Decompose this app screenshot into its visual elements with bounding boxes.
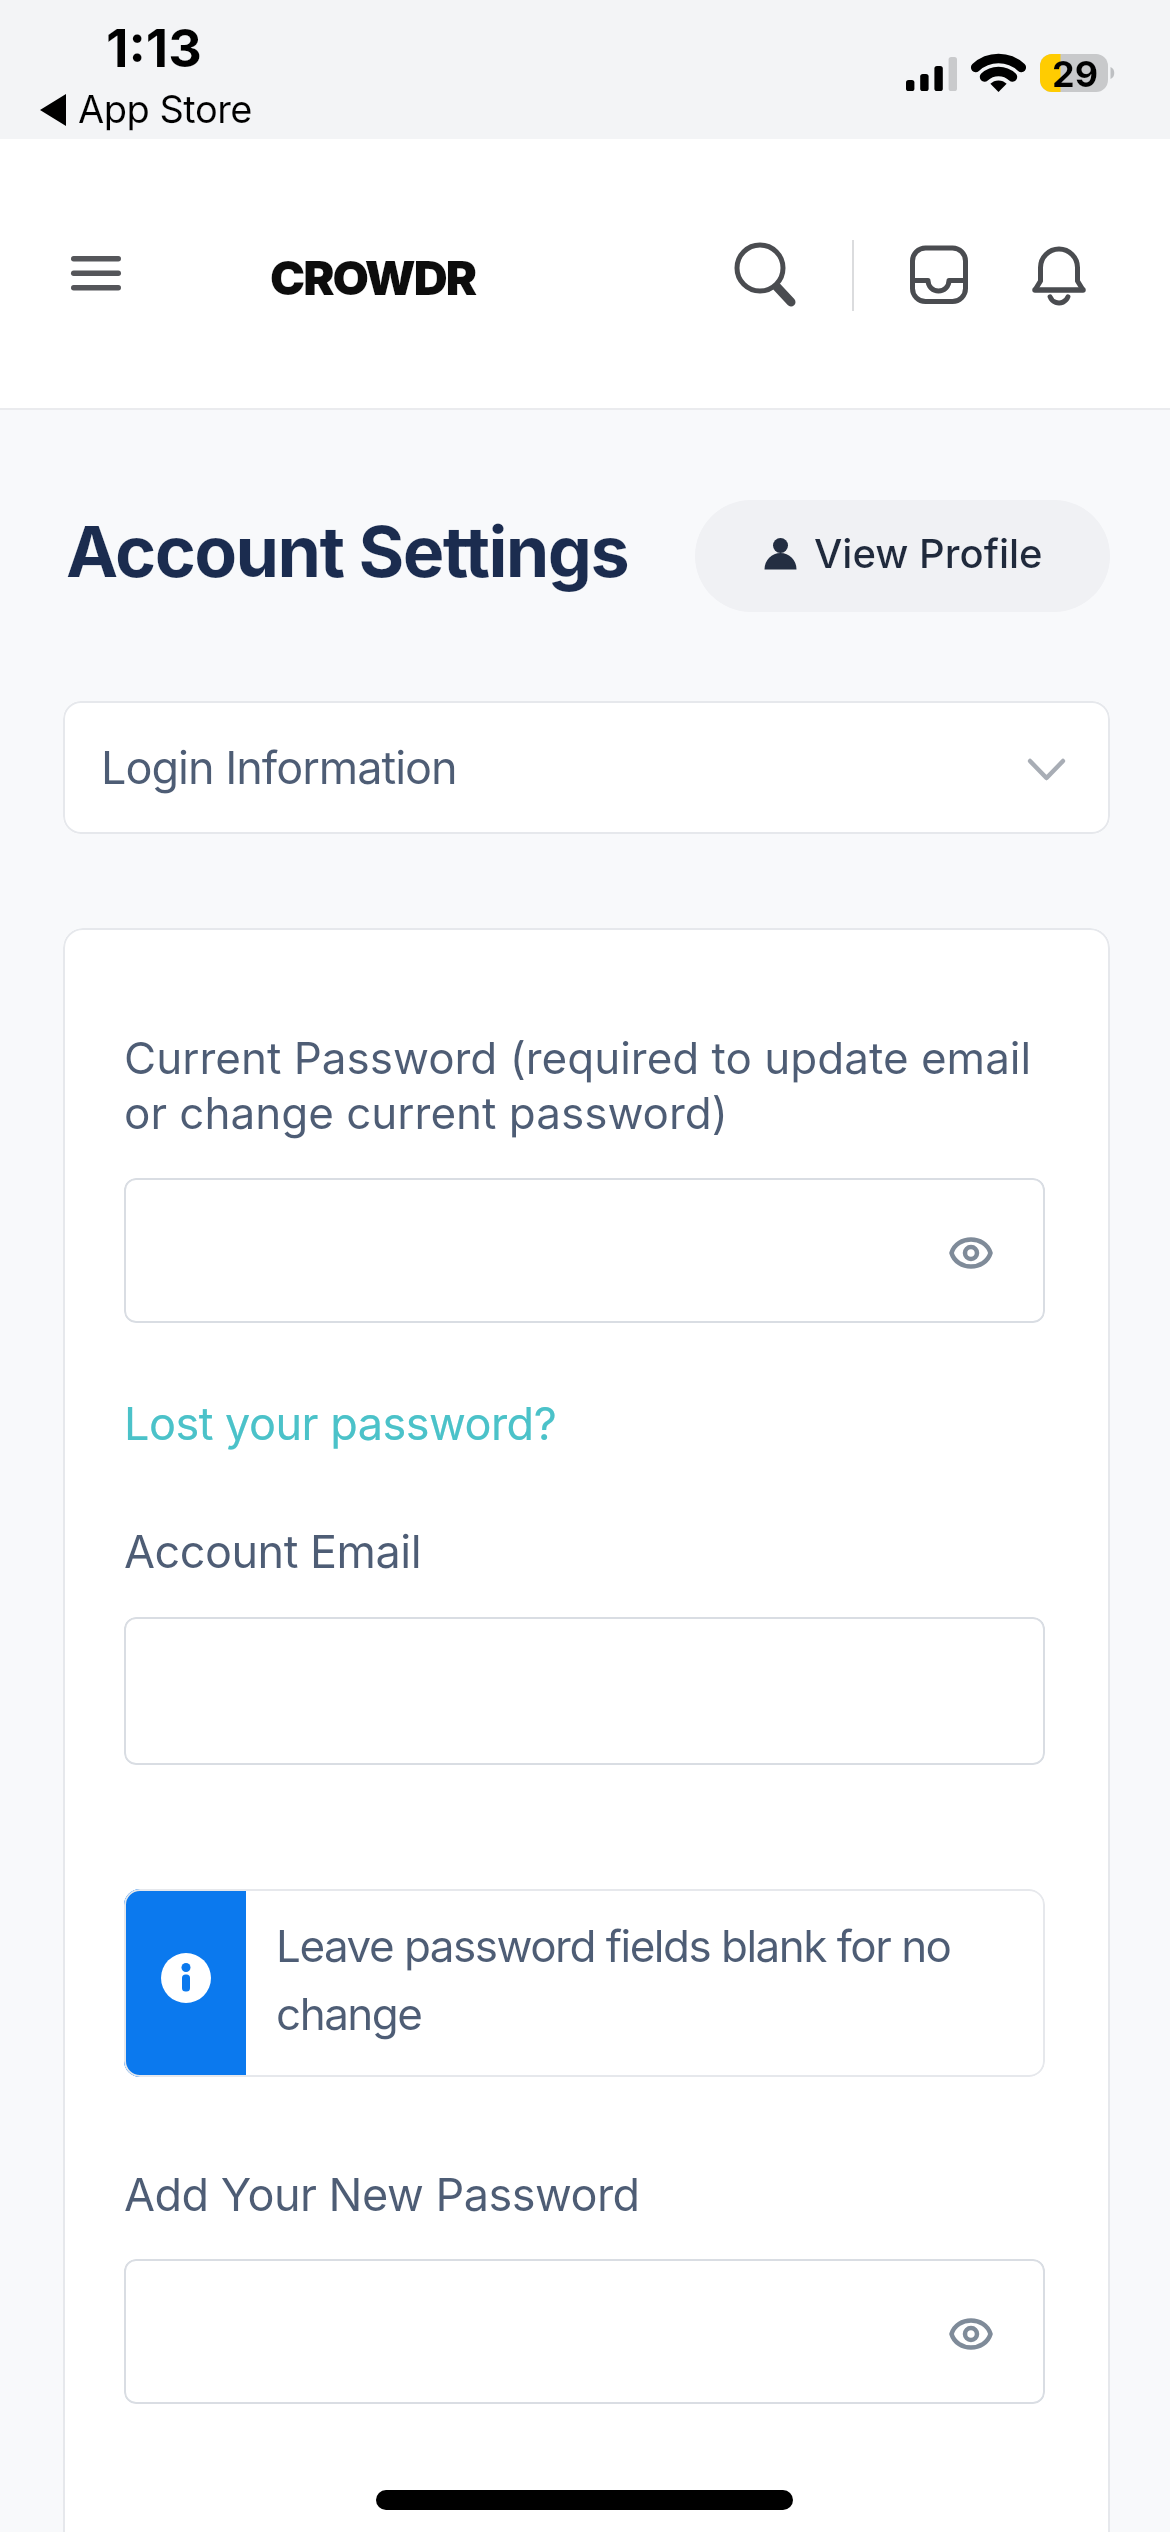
button[interactable] [944, 2314, 998, 2354]
button[interactable] [124, 2259, 1045, 2404]
staticText: Current Password (required to update ema… [124, 1031, 1032, 1084]
button[interactable] [1022, 236, 1096, 314]
staticText: or change current password) [124, 1086, 728, 1139]
staticText: CROWDR [270, 249, 476, 306]
staticText: 29 [1052, 52, 1099, 96]
button[interactable] [944, 1233, 998, 1273]
staticText: Account Email [124, 1524, 422, 1578]
staticText: Account Settings [66, 509, 629, 594]
button[interactable] [695, 500, 1110, 612]
staticText: Add Your New Password [124, 2167, 640, 2221]
staticText: Login Information [101, 740, 457, 794]
staticText: change [276, 1987, 422, 2040]
button[interactable] [63, 701, 1110, 834]
button[interactable] [722, 230, 808, 316]
button[interactable] [56, 240, 136, 306]
button[interactable] [900, 236, 978, 314]
staticText: App Store [78, 86, 252, 132]
button[interactable] [124, 1617, 1045, 1765]
staticText: View Profile [814, 529, 1043, 577]
button[interactable]: Lost your password? [124, 1396, 557, 1450]
button[interactable] [124, 1178, 1045, 1323]
staticText: Leave password fields blank for no [276, 1919, 951, 1972]
staticText: 1:13 [106, 17, 202, 80]
